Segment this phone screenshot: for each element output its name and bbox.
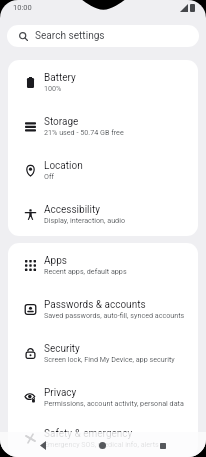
staticText: Storage (44, 116, 79, 128)
button[interactable]: Back (30, 433, 56, 457)
button[interactable]: Apps (8, 243, 198, 287)
staticText: Battery (44, 72, 76, 84)
staticText: Security (44, 343, 80, 355)
staticText: Emergency SOS, medical info, alerts (44, 440, 159, 448)
button[interactable]: Safety & emergency (8, 419, 198, 457)
button[interactable]: Security (8, 331, 198, 375)
staticText: Permissions, account activity, personal … (44, 399, 184, 407)
staticText: Accessibility (44, 204, 100, 216)
staticText: 100% (44, 84, 62, 92)
button[interactable]: Passwords & accounts (8, 287, 198, 331)
staticText: Privacy (44, 387, 77, 399)
staticText: Search settings (35, 30, 105, 42)
staticText: Recent apps, default apps (44, 267, 127, 275)
staticText: Location (44, 160, 83, 172)
button[interactable]: Privacy (8, 375, 198, 419)
staticText: 21% used - 50.74 GB free (44, 128, 124, 136)
button[interactable]: Storage (8, 104, 198, 148)
button[interactable]: Battery (8, 60, 198, 104)
button[interactable]: Location (8, 148, 198, 192)
button[interactable]: Accessibility (8, 192, 198, 236)
staticText: Safety & emergency (44, 428, 133, 440)
staticText: 10:00 (13, 3, 32, 12)
staticText: Display, interaction, audio (44, 216, 126, 224)
staticText: Screen lock, Find My Device, app securit… (44, 355, 175, 363)
button[interactable]: Recent apps (150, 433, 176, 457)
button[interactable]: Search settings (7, 25, 199, 47)
button[interactable]: Home (89, 433, 115, 457)
staticText: Apps (44, 255, 67, 267)
staticText: Saved passwords, auto-fill, synced accou… (44, 311, 185, 319)
staticText: Passwords & accounts (44, 299, 146, 311)
staticText: Off (44, 172, 54, 180)
